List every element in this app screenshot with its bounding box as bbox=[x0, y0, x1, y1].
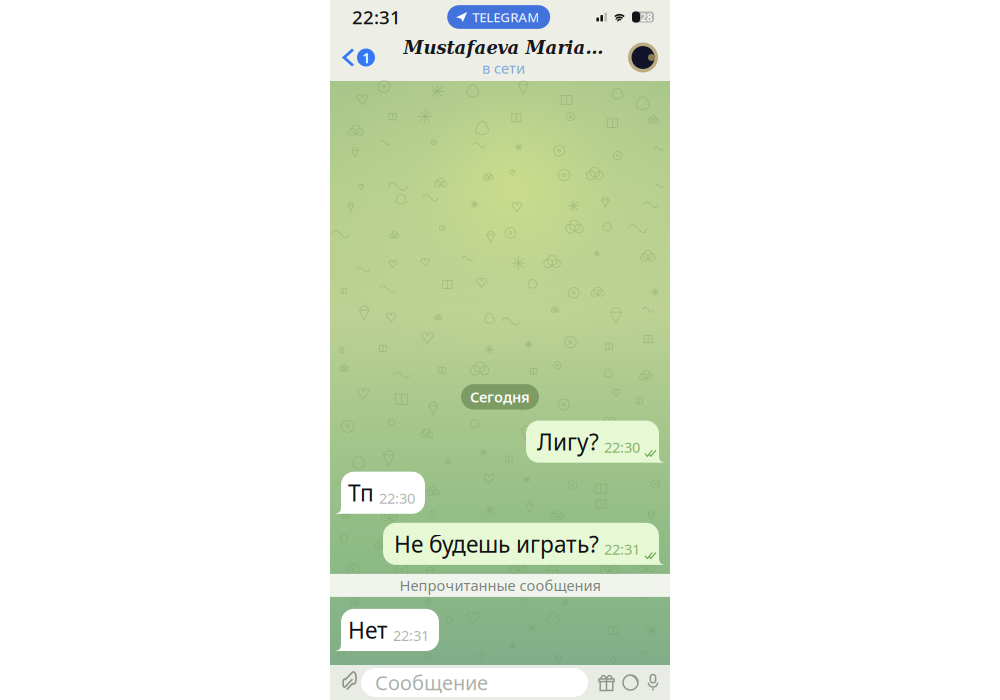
staticText: 22:31 bbox=[352, 5, 401, 29]
staticText: Непрочитанные сообщения bbox=[399, 576, 600, 595]
staticText: Mustafaeva Marianna bbox=[403, 37, 603, 58]
staticText: Лигу? bbox=[537, 427, 599, 457]
staticText: Тп bbox=[348, 478, 374, 508]
staticText: 22:30 bbox=[604, 437, 640, 457]
staticText: 22:31 bbox=[393, 625, 429, 645]
button[interactable]: Stickers bbox=[623, 675, 638, 690]
staticText: в сети bbox=[482, 58, 525, 78]
staticText: Не будешь играть? bbox=[394, 529, 599, 559]
staticText: 28 bbox=[640, 10, 652, 24]
staticText: TELEGRAM bbox=[472, 8, 539, 26]
staticText: 22:31 bbox=[604, 539, 640, 559]
staticText: Нет bbox=[348, 615, 388, 645]
staticText: 22:30 bbox=[379, 488, 415, 508]
staticText: 1 bbox=[362, 48, 370, 67]
staticText: Сообщение bbox=[375, 669, 488, 696]
staticText: Сегодня bbox=[470, 387, 530, 407]
button[interactable]: Contact profile bbox=[624, 38, 662, 76]
button[interactable]: Record voice message bbox=[647, 674, 659, 690]
button[interactable]: Back bbox=[336, 40, 383, 75]
button[interactable]: Attach file bbox=[336, 669, 361, 696]
button[interactable]: Send a gift bbox=[599, 674, 614, 690]
